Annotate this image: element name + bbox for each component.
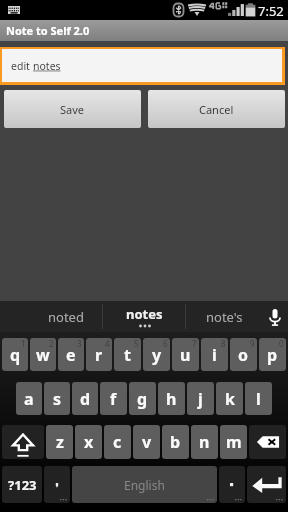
staticText: 0 (279, 338, 284, 349)
button[interactable]: d (72, 382, 98, 415)
button[interactable]: e (58, 338, 84, 371)
staticText: t (124, 344, 131, 366)
staticText: c (113, 431, 122, 453)
button[interactable]: z (46, 425, 73, 459)
button[interactable]: x (75, 425, 102, 459)
staticText: b (170, 431, 181, 453)
staticText: r (95, 344, 103, 366)
button[interactable]: i (201, 338, 228, 371)
button[interactable]: Comma (44, 466, 70, 503)
button[interactable]: note's (186, 301, 262, 332)
staticText: d (80, 388, 91, 410)
staticText: x (84, 431, 94, 453)
staticText: 9 (250, 338, 255, 349)
staticText: q (10, 344, 21, 366)
staticText: 2 (49, 338, 54, 349)
button[interactable]: Backspace (249, 425, 286, 459)
staticText: 6 (163, 338, 168, 349)
button[interactable]: c (104, 425, 131, 459)
button[interactable]: Enter (247, 466, 286, 503)
button[interactable]: n (191, 425, 218, 459)
staticText: English (124, 477, 165, 493)
staticText: n (199, 431, 210, 453)
button[interactable]: Symbols (2, 466, 42, 503)
button[interactable]: noted (0, 301, 102, 332)
staticText: z (56, 431, 64, 453)
staticText: s (53, 388, 62, 410)
button[interactable]: Period (219, 466, 245, 503)
button[interactable]: k (216, 382, 243, 415)
staticText: edit (11, 59, 33, 73)
button[interactable]: q (2, 338, 28, 371)
staticText: a (24, 388, 34, 410)
button[interactable]: b (162, 425, 189, 459)
button[interactable]: edit (2, 49, 282, 82)
button[interactable]: t (114, 338, 141, 371)
button[interactable]: l (245, 382, 272, 415)
staticText: 1 (21, 338, 26, 349)
button[interactable]: o (230, 338, 257, 371)
button[interactable]: notes (103, 301, 185, 332)
staticText: 7:52 (258, 2, 284, 20)
staticText: Note to Self 2.0 (6, 23, 90, 38)
staticText: notes (126, 305, 163, 323)
staticText: ?123 (8, 476, 37, 494)
button[interactable]: s (44, 382, 70, 415)
button[interactable]: f (100, 382, 127, 415)
staticText: f (110, 388, 117, 410)
staticText: u (180, 344, 191, 366)
staticText: h (166, 388, 177, 410)
staticText: g (137, 388, 148, 410)
staticText: j (198, 388, 203, 410)
staticText: noted (48, 308, 84, 326)
button[interactable]: Save (4, 90, 141, 128)
staticText: note's (206, 308, 243, 326)
staticText: 8 (221, 338, 226, 349)
button[interactable]: g (129, 382, 156, 415)
button[interactable]: Cancel (148, 90, 285, 128)
button[interactable]: r (86, 338, 112, 371)
button[interactable]: v (133, 425, 160, 459)
staticText: w (36, 344, 50, 366)
button[interactable]: j (187, 382, 214, 415)
staticText: k (225, 388, 235, 410)
staticText: e (66, 344, 76, 366)
staticText: Cancel (199, 102, 234, 117)
button[interactable]: y (143, 338, 170, 371)
staticText: i (212, 344, 217, 366)
button[interactable]: English (72, 466, 217, 503)
staticText: v (142, 431, 152, 453)
button[interactable]: Shift (2, 425, 44, 459)
staticText: 7 (192, 338, 197, 349)
staticText: p (267, 344, 278, 366)
staticText: notes (33, 59, 61, 73)
button[interactable]: m (220, 425, 247, 459)
staticText: 4 (105, 338, 110, 349)
button[interactable]: h (158, 382, 185, 415)
staticText: 3 (77, 338, 82, 349)
button[interactable]: p (259, 338, 286, 371)
staticText: l (256, 388, 261, 410)
staticText: y (152, 344, 162, 366)
staticText: 5 (134, 338, 139, 349)
staticText: o (238, 344, 249, 366)
button[interactable]: u (172, 338, 199, 371)
staticText: m (226, 431, 242, 453)
button[interactable]: Voice input (262, 301, 288, 332)
button[interactable]: a (16, 382, 42, 415)
button[interactable]: w (30, 338, 56, 371)
staticText: Save (60, 102, 85, 117)
